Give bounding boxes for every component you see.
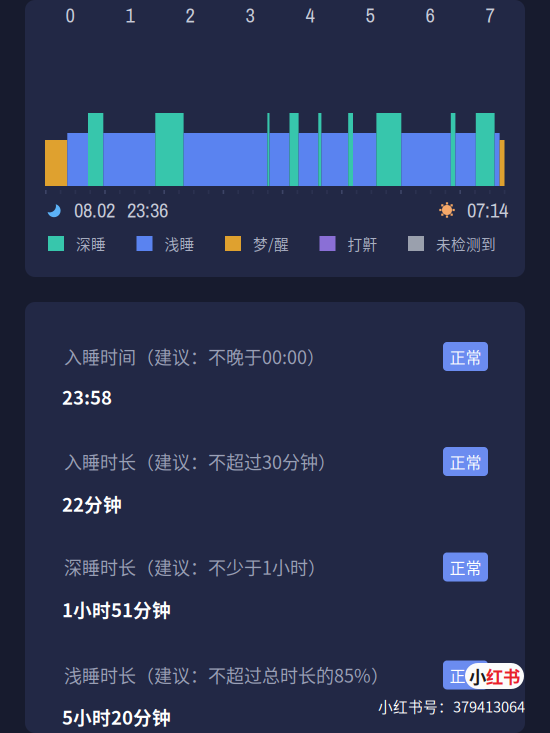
staticText: 7 [485, 1, 494, 29]
staticText: 6 [425, 1, 434, 29]
staticText: 深睡 [76, 233, 106, 254]
staticText: 小 [469, 663, 486, 689]
staticText: 07:14 [467, 196, 508, 224]
staticText: 23:58 [62, 383, 112, 410]
staticText: 浅睡时长（建议：不超过总时长的85%） [64, 662, 389, 688]
staticText: 未检测到 [436, 233, 496, 254]
staticText: 梦/醒 [253, 233, 289, 254]
button[interactable]: 正常 [443, 447, 488, 476]
staticText: 小红书号：379413064 [378, 695, 525, 717]
staticText: 0 [65, 1, 74, 29]
button[interactable]: 正常 [443, 660, 488, 689]
staticText: 浅睡 [164, 233, 194, 254]
button[interactable]: 正常 [443, 552, 488, 581]
staticText: 红书 [486, 663, 520, 689]
staticText: 4 [305, 1, 314, 29]
staticText: 正常 [449, 345, 481, 368]
staticText: 打鼾 [347, 233, 377, 254]
staticText: 23:36 [127, 196, 168, 224]
staticText: 5 [365, 1, 374, 29]
staticText: 正常 [449, 555, 481, 579]
staticText: 2 [185, 1, 194, 29]
staticText: 22分钟 [62, 490, 122, 517]
staticText: 正常 [449, 663, 481, 687]
staticText: 深睡时长（建议：不少于1小时） [64, 554, 326, 580]
staticText: 1小时51分钟 [62, 595, 171, 622]
staticText: 入睡时长（建议：不超过30分钟） [64, 448, 336, 475]
staticText: 1 [125, 1, 134, 29]
staticText: 正常 [449, 450, 481, 473]
staticText: 入睡时间（建议：不晚于00:00） [64, 343, 325, 370]
staticText: 3 [245, 1, 254, 29]
staticText: 5小时20分钟 [62, 703, 171, 730]
button[interactable]: 正常 [443, 342, 488, 371]
staticText: 08.02 [74, 196, 115, 224]
